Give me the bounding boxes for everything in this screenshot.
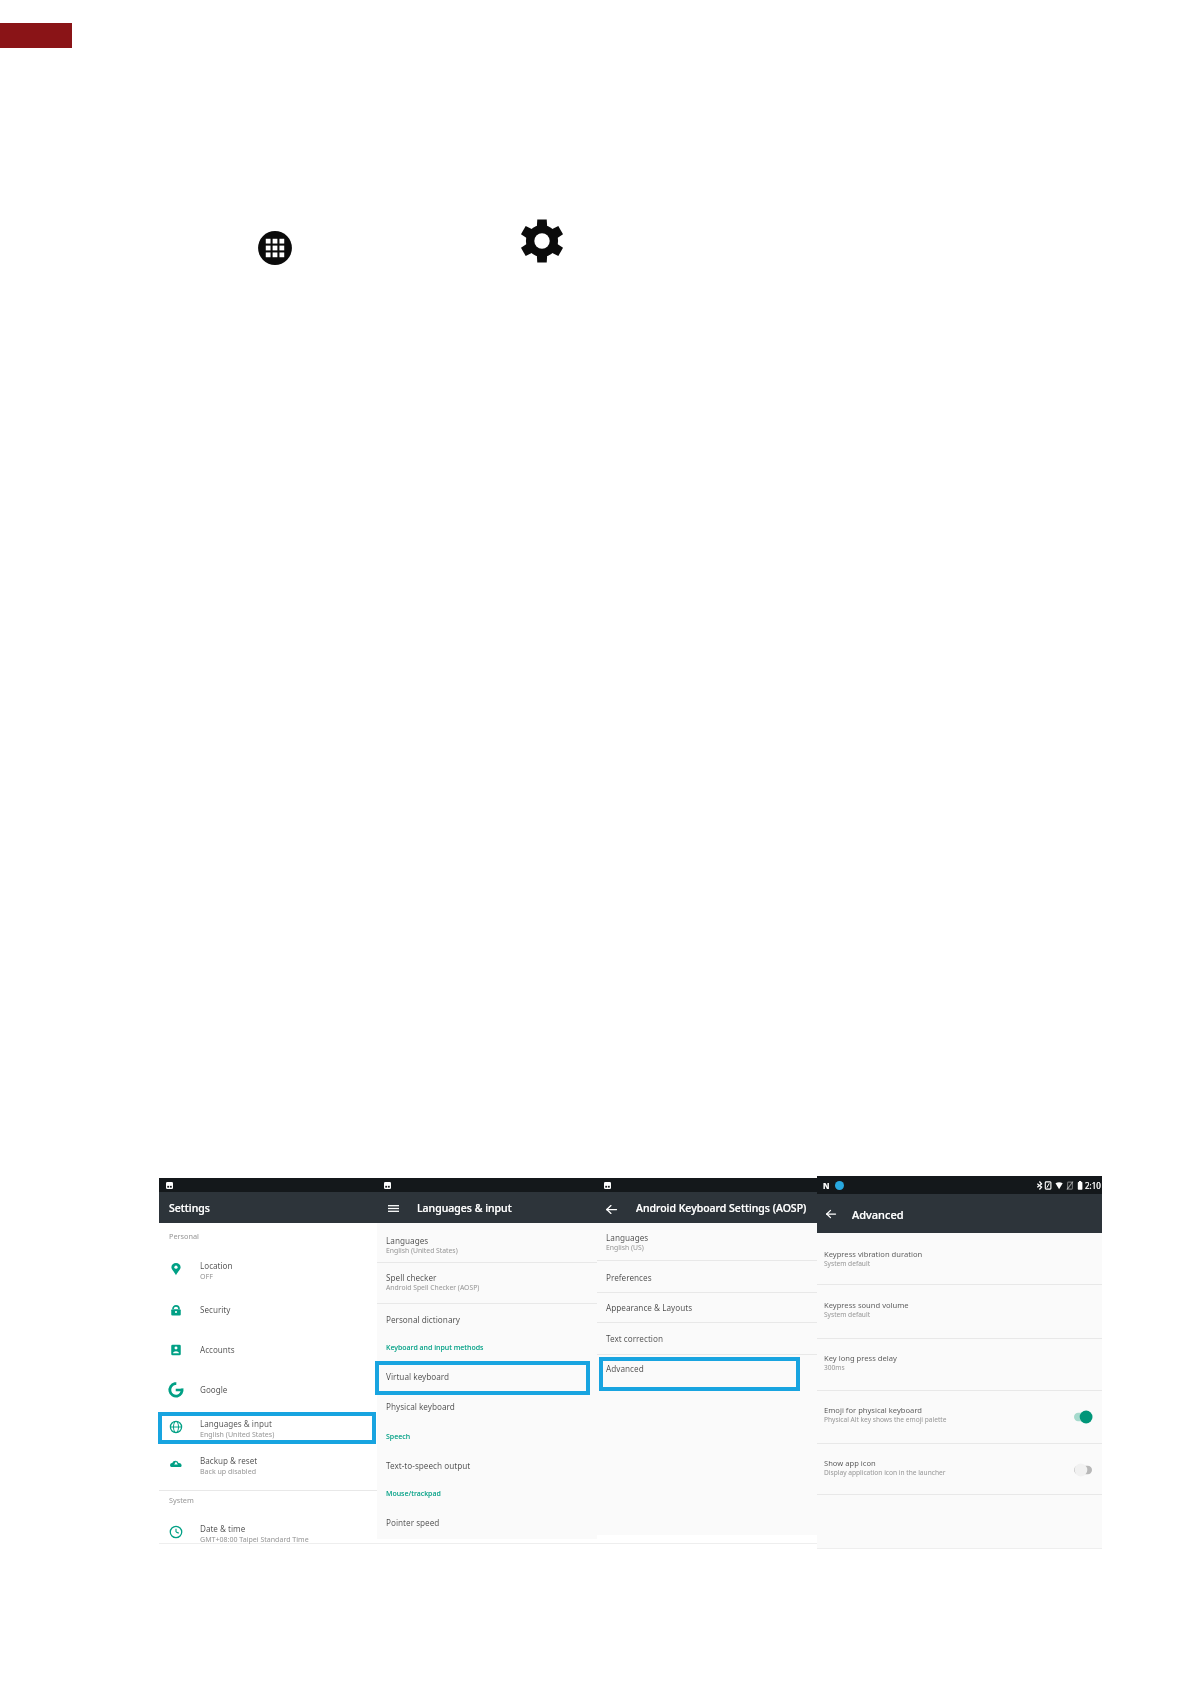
staticText: Keypress sound volume bbox=[824, 1300, 909, 1310]
button[interactable] bbox=[817, 1243, 1102, 1275]
staticText: Pointer speed bbox=[386, 1517, 440, 1528]
staticText: OFF bbox=[200, 1271, 213, 1281]
button[interactable] bbox=[817, 1452, 1102, 1484]
button[interactable] bbox=[159, 1338, 377, 1362]
staticText: Emoji for physical keyboard bbox=[824, 1405, 923, 1415]
staticText: Text-to-speech output bbox=[386, 1460, 471, 1471]
staticText: Speech bbox=[386, 1432, 411, 1442]
button[interactable] bbox=[597, 1297, 817, 1319]
staticText: Personal bbox=[169, 1231, 199, 1241]
button[interactable] bbox=[159, 1449, 377, 1479]
staticText: Virtual keyboard bbox=[386, 1371, 450, 1382]
button[interactable] bbox=[597, 1267, 817, 1289]
staticText: Accounts bbox=[200, 1344, 235, 1355]
button[interactable] bbox=[377, 1396, 597, 1418]
staticText: System default bbox=[824, 1259, 871, 1268]
button[interactable] bbox=[817, 1294, 1102, 1326]
button[interactable] bbox=[817, 1399, 1102, 1431]
staticText: Mouse/trackpad bbox=[386, 1489, 441, 1499]
staticText: Physical keyboard bbox=[386, 1401, 455, 1412]
staticText: Advanced bbox=[606, 1363, 644, 1374]
button[interactable] bbox=[817, 1347, 1102, 1379]
staticText: Languages bbox=[606, 1232, 649, 1243]
staticText: Show app icon bbox=[824, 1458, 876, 1468]
staticText: GMT+08:00 Taipei Standard Time bbox=[200, 1534, 309, 1544]
staticText: English (US) bbox=[606, 1243, 644, 1252]
button[interactable] bbox=[377, 1230, 597, 1258]
button[interactable] bbox=[158, 1412, 376, 1444]
staticText: 300ms bbox=[824, 1363, 845, 1372]
staticText: Date & time bbox=[200, 1523, 246, 1534]
staticText: System default bbox=[824, 1310, 871, 1319]
button[interactable] bbox=[597, 1227, 817, 1255]
staticText: Languages & input bbox=[417, 1201, 512, 1215]
button[interactable] bbox=[377, 1267, 597, 1295]
button[interactable]: Apps bbox=[257, 230, 293, 266]
staticText: Display application icon in the launcher bbox=[824, 1468, 946, 1477]
button[interactable] bbox=[377, 1512, 597, 1534]
staticText: English (United States) bbox=[386, 1246, 458, 1255]
staticText: Preferences bbox=[606, 1272, 652, 1283]
staticText: Android Spell Checker (AOSP) bbox=[386, 1283, 480, 1292]
button[interactable] bbox=[159, 1378, 377, 1402]
staticText: N bbox=[823, 1180, 830, 1191]
staticText: Spell checker bbox=[386, 1272, 437, 1283]
button[interactable] bbox=[159, 1254, 377, 1284]
staticText: 2:10 bbox=[1085, 1180, 1101, 1191]
staticText: Personal dictionary bbox=[386, 1314, 461, 1325]
staticText: Android Keyboard Settings (AOSP) bbox=[636, 1201, 807, 1215]
staticText: Settings bbox=[169, 1201, 210, 1215]
button[interactable]: Settings bbox=[520, 219, 564, 263]
button[interactable] bbox=[159, 1298, 377, 1322]
staticText: Physical Alt key shows the emoji palette bbox=[824, 1415, 947, 1424]
staticText: Keypress vibration duration bbox=[824, 1249, 923, 1259]
staticText: Languages bbox=[386, 1235, 429, 1246]
staticText: Key long press delay bbox=[824, 1353, 897, 1363]
staticText: Back up disabled bbox=[200, 1466, 256, 1476]
staticText: Appearance & Layouts bbox=[606, 1302, 693, 1313]
staticText: Keyboard and input methods bbox=[386, 1343, 484, 1353]
button[interactable] bbox=[375, 1361, 590, 1395]
staticText: Text correction bbox=[606, 1333, 663, 1344]
staticText: English (United States) bbox=[200, 1429, 275, 1439]
button[interactable] bbox=[599, 1357, 800, 1391]
button[interactable] bbox=[159, 1517, 377, 1547]
button[interactable] bbox=[377, 1455, 597, 1477]
staticText: Languages & input bbox=[200, 1418, 272, 1429]
button[interactable] bbox=[377, 1309, 597, 1331]
staticText: Location bbox=[200, 1260, 233, 1271]
staticText: Backup & reset bbox=[200, 1455, 258, 1466]
staticText: Advanced bbox=[852, 1207, 904, 1222]
button[interactable] bbox=[597, 1328, 817, 1350]
staticText: Security bbox=[200, 1304, 231, 1315]
staticText: Google bbox=[200, 1384, 228, 1395]
staticText: System bbox=[169, 1495, 194, 1505]
